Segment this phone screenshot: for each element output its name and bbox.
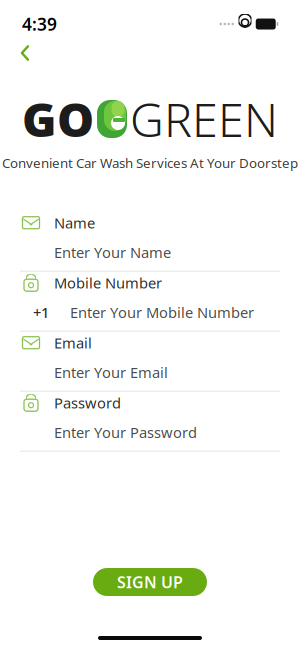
staticText: Enter Your Name bbox=[54, 242, 171, 262]
staticText: Name bbox=[54, 213, 95, 232]
staticText: Enter Your Mobile Number bbox=[70, 302, 254, 322]
staticText: Convenient Car Wash Services At Your Doo… bbox=[2, 154, 298, 172]
button[interactable]: Password bbox=[0, 392, 300, 452]
staticText: Enter Your Password bbox=[54, 422, 197, 442]
button[interactable]: Name bbox=[0, 212, 300, 272]
button[interactable]: Email bbox=[0, 332, 300, 392]
staticText: SIGN UP bbox=[117, 571, 183, 593]
button[interactable]: Mobile Number bbox=[0, 272, 300, 332]
staticText: Mobile Number bbox=[54, 273, 162, 292]
staticText: Password bbox=[54, 393, 121, 412]
staticText: +1 bbox=[33, 302, 49, 322]
staticText: Email bbox=[54, 333, 92, 352]
button[interactable]: Back bbox=[8, 36, 42, 70]
staticText: Enter Your Email bbox=[54, 362, 168, 382]
button[interactable]: SIGN UP bbox=[93, 568, 207, 596]
staticText: GO bbox=[22, 88, 94, 150]
staticText: GREEN bbox=[130, 88, 278, 150]
staticText: 4:39 bbox=[22, 12, 57, 35]
